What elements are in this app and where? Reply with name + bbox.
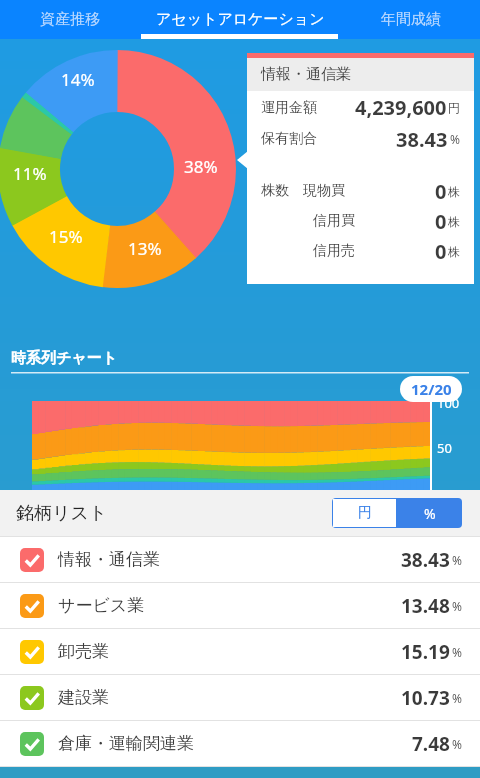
staticText: 0	[435, 238, 447, 265]
button[interactable]: 建設業	[0, 675, 480, 720]
staticText: 建設業	[58, 687, 109, 708]
staticText: 100	[437, 394, 460, 412]
staticText: 株数	[261, 182, 289, 200]
staticText: 12/12	[308, 497, 343, 515]
staticText: 0	[435, 178, 447, 205]
staticText: 14%	[61, 68, 95, 91]
button[interactable]: 倉庫・運輸関連業	[0, 721, 480, 766]
button[interactable]: サービス業	[0, 583, 480, 628]
button[interactable]: アセットアロケーション	[139, 0, 341, 39]
staticText: %	[452, 598, 462, 614]
staticText: 銘柄リスト	[16, 502, 108, 525]
staticText: 38%	[184, 155, 218, 178]
button[interactable]: %	[397, 498, 462, 528]
staticText: 株	[448, 184, 460, 199]
staticText: 11%	[13, 162, 47, 185]
staticText: 50	[437, 439, 452, 457]
staticText: 12/20	[411, 379, 452, 399]
button[interactable]: 円	[333, 499, 396, 527]
staticText: 信用買	[313, 212, 355, 230]
staticText: サービス業	[58, 595, 145, 616]
button[interactable]: 情報・通信業	[0, 537, 480, 582]
staticText: %	[424, 504, 436, 523]
staticText: 保有割合	[261, 130, 317, 148]
staticText: 円	[358, 504, 372, 522]
button[interactable]: 情報・通信業	[247, 53, 474, 284]
staticText: 資産推移	[40, 10, 100, 29]
staticText: 運用金額	[261, 99, 317, 117]
staticText: 時系列チャート	[11, 349, 118, 368]
staticText: 信用売	[313, 242, 355, 260]
staticText: 情報・通信業	[58, 549, 160, 570]
button[interactable]: 卸売業	[0, 629, 480, 674]
staticText: 13.48	[401, 593, 450, 619]
staticText: 年間成績	[381, 10, 441, 29]
staticText: 38.43	[401, 547, 450, 573]
button[interactable]: 資産推移	[0, 0, 139, 39]
staticText: 情報・通信業	[261, 65, 351, 84]
staticText: アセットアロケーション	[156, 10, 325, 29]
staticText: 15.19	[401, 639, 450, 665]
staticText: 10.73	[401, 685, 450, 711]
staticText: 0	[435, 208, 447, 235]
button[interactable]: 12/20	[400, 376, 462, 402]
staticText: %	[452, 552, 462, 568]
staticText: 13%	[128, 237, 162, 260]
staticText: 円	[448, 100, 460, 115]
staticText: %	[452, 690, 462, 706]
staticText: %	[452, 736, 462, 752]
staticText: 倉庫・運輸関連業	[58, 733, 194, 754]
staticText: 株	[448, 244, 460, 259]
staticText: 卸売業	[58, 641, 109, 662]
staticText: 4,239,600	[355, 94, 447, 121]
staticText: 15%	[49, 225, 83, 248]
staticText: 7.48	[412, 731, 450, 757]
button[interactable]: 年間成績	[341, 0, 480, 39]
staticText: 38.43	[396, 126, 448, 153]
staticText: 12/18	[382, 497, 417, 515]
staticText: 現物買	[303, 182, 345, 200]
button[interactable]: アセットアロケーション円グラフ	[0, 39, 480, 490]
staticText: 株	[448, 214, 460, 229]
staticText: 11/26	[88, 497, 123, 515]
staticText: 11/20	[13, 497, 48, 515]
staticText: %	[452, 644, 462, 660]
staticText: 0	[437, 486, 445, 504]
staticText: %	[450, 131, 460, 147]
